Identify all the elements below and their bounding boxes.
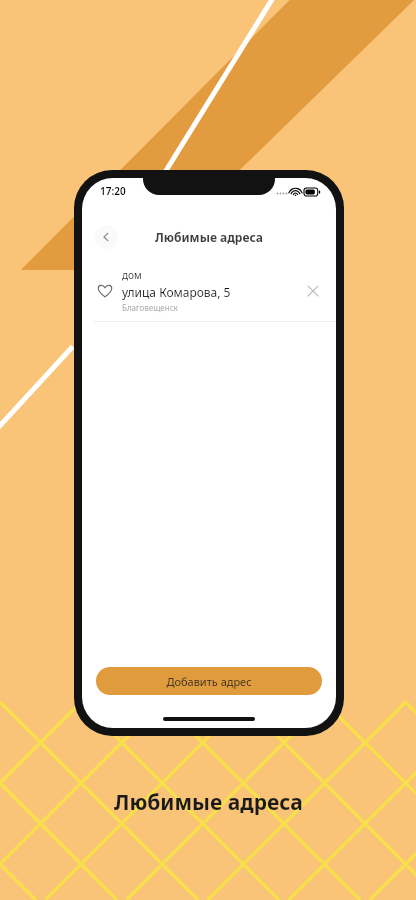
staticText: Любимые адреса	[114, 788, 303, 817]
staticText: улица Комарова, 5	[122, 284, 231, 300]
button[interactable]: Назад	[94, 225, 118, 249]
staticText: Добавить адрес	[166, 674, 252, 689]
button[interactable]: Добавить адрес	[96, 667, 322, 695]
staticText: дом	[122, 268, 142, 282]
staticText: Благовещенск	[122, 302, 178, 313]
staticText: 17:20	[100, 184, 126, 198]
button[interactable]: дом	[82, 266, 336, 321]
button[interactable]: Удалить адрес	[302, 280, 324, 302]
staticText: Любимые адреса	[155, 229, 263, 245]
